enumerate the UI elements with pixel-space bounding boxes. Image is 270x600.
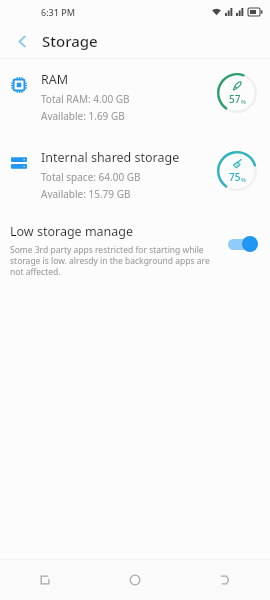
button[interactable]: Home — [90, 560, 180, 600]
button[interactable]: RAM — [0, 65, 270, 129]
button[interactable]: Internal shared storage — [0, 143, 270, 207]
staticText: Total space: 64.00 GB — [41, 170, 141, 184]
staticText: Available: 1.69 GB — [41, 109, 125, 123]
staticText: Available: 15.79 GB — [41, 187, 131, 201]
staticText: Low storage manage — [10, 223, 134, 240]
button[interactable]: Back — [180, 560, 270, 600]
button[interactable]: Low storage manage toggle — [226, 235, 260, 253]
staticText: % — [241, 176, 246, 184]
staticText: 57 — [229, 92, 241, 106]
button[interactable]: Back — [6, 25, 38, 57]
staticText: Internal shared storage — [41, 149, 180, 166]
staticText: Storage — [42, 31, 98, 51]
button[interactable]: Recents — [0, 560, 90, 600]
staticText: Some 3rd party apps restricted for start… — [10, 244, 218, 277]
staticText: 75 — [229, 170, 241, 184]
button[interactable]: Low storage manage — [0, 219, 270, 281]
staticText: % — [241, 98, 246, 106]
staticText: RAM — [41, 71, 69, 88]
staticText: 6:31 PM — [41, 6, 75, 18]
staticText: Total RAM: 4.00 GB — [41, 92, 130, 106]
